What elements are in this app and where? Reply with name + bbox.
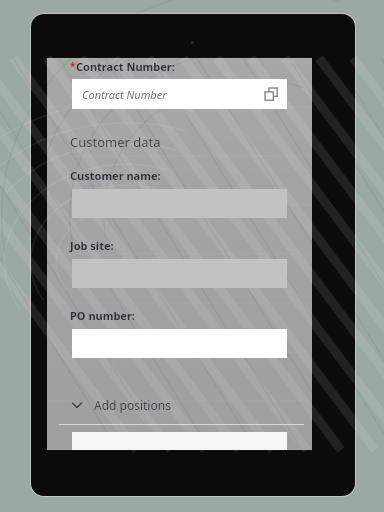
button[interactable]: Copy contract number — [261, 84, 281, 104]
staticText: Contract Number — [82, 87, 167, 102]
staticText: Customer data — [70, 133, 161, 151]
button[interactable]: Contract Number — [72, 79, 287, 109]
staticText: Customer name: — [70, 168, 161, 183]
staticText: Add positions — [94, 397, 171, 413]
staticText: Contract Number: — [76, 59, 175, 74]
staticText: * — [70, 59, 76, 73]
button[interactable]: Add positions — [47, 392, 312, 418]
staticText: Job site: — [70, 238, 114, 253]
staticText: PO number: — [70, 308, 135, 323]
